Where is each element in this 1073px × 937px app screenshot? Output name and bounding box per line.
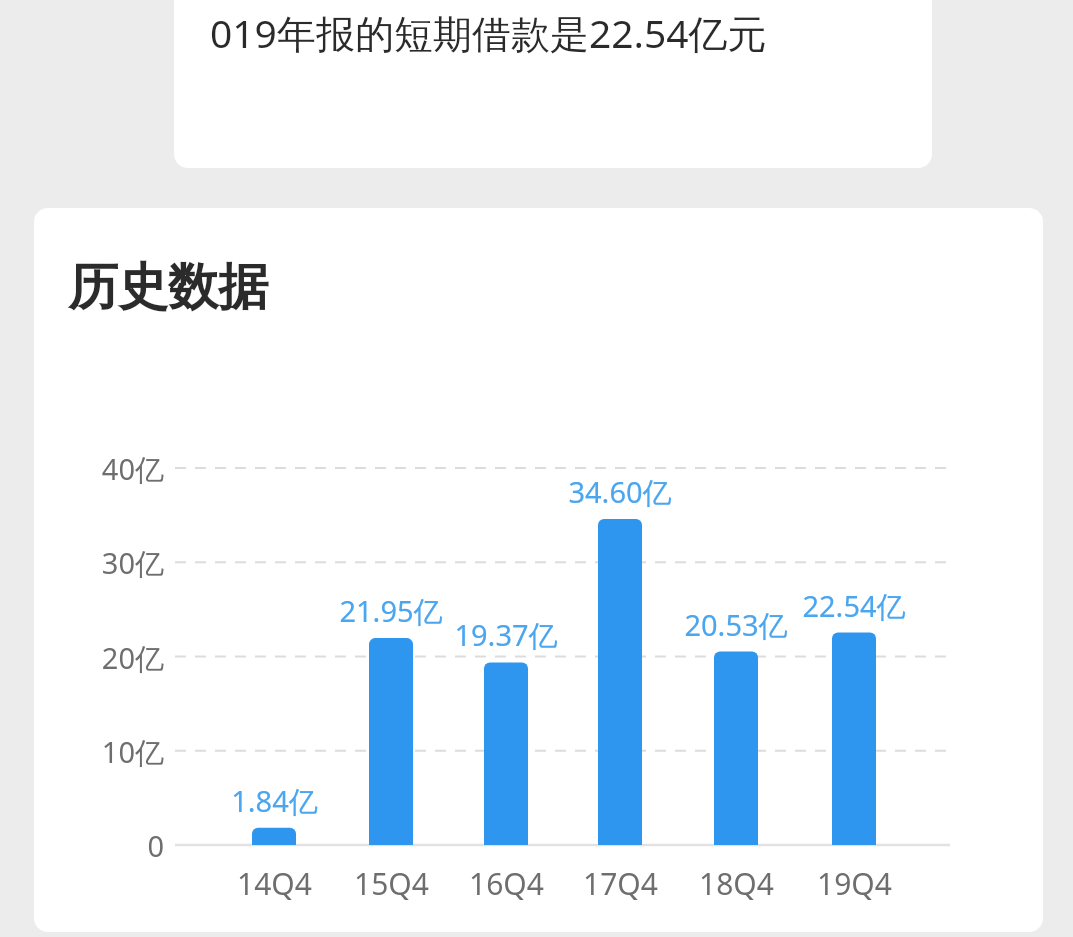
staticText: 10亿 — [101, 732, 164, 770]
staticText: 14Q4 — [237, 863, 312, 903]
staticText: 20.53亿 — [684, 605, 788, 645]
staticText: 19.37亿 — [454, 615, 558, 655]
staticText: 17Q4 — [583, 863, 658, 903]
staticText: 22.54亿 — [802, 586, 906, 626]
staticText: 0 — [147, 826, 164, 864]
staticText: 019年报的短期借款是22.54亿元 — [210, 6, 767, 59]
staticText: 1.84亿 — [231, 781, 318, 821]
staticText: 18Q4 — [699, 863, 774, 903]
button[interactable]: 019年报的短期借款是22.54亿元 — [174, 0, 932, 168]
button[interactable]: 历史数据 — [34, 208, 1043, 932]
staticText: 34.60亿 — [568, 472, 672, 512]
staticText: 40亿 — [101, 449, 164, 487]
staticText: 20亿 — [101, 638, 164, 676]
staticText: 30亿 — [101, 543, 164, 581]
staticText: 历史数据 — [68, 256, 268, 319]
staticText: 19Q4 — [817, 863, 892, 903]
staticText: 16Q4 — [469, 863, 544, 903]
staticText: 21.95亿 — [339, 591, 443, 631]
staticText: 15Q4 — [354, 863, 429, 903]
